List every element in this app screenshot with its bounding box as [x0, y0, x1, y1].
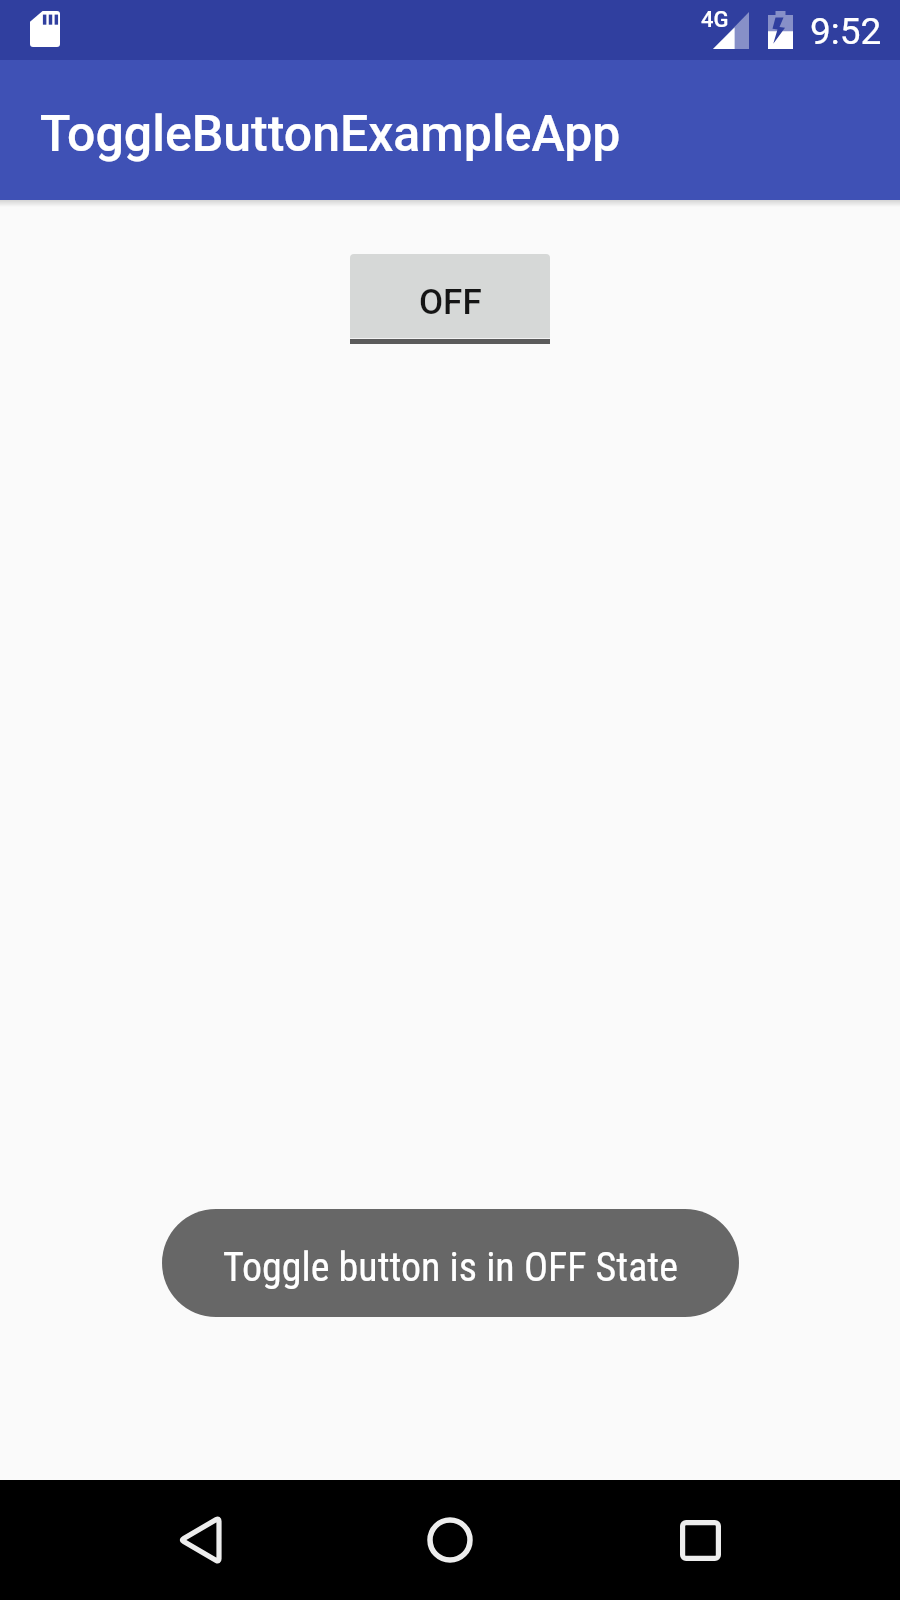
button[interactable]: OFF: [350, 254, 550, 344]
staticText: Toggle button is in OFF State: [223, 1244, 678, 1291]
staticText: ToggleButtonExampleApp: [40, 105, 621, 164]
staticText: OFF: [419, 282, 482, 323]
button[interactable]: Toggle button is in OFF State: [162, 1209, 739, 1317]
button[interactable]: Recents: [650, 1480, 750, 1600]
staticText: 9:52: [810, 10, 882, 53]
button[interactable]: Back: [150, 1480, 250, 1600]
staticText: 4G: [701, 7, 729, 33]
button[interactable]: Home: [400, 1480, 500, 1600]
